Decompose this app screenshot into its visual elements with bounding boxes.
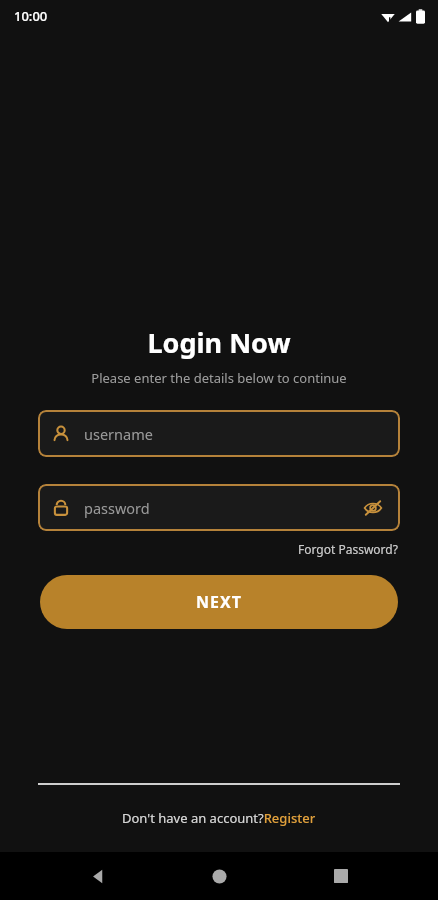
staticText: Login Now (0, 324, 438, 361)
staticText: Please enter the details below to contin… (0, 369, 438, 387)
button[interactable]: Home (195, 852, 243, 900)
button[interactable]: NEXT (40, 575, 398, 629)
button[interactable]: Recent apps (317, 852, 365, 900)
button[interactable]: Forgot Password? (296, 539, 400, 559)
staticText: 10:00 (14, 7, 48, 25)
staticText: Forgot Password? (298, 541, 398, 557)
staticText: username (84, 424, 386, 444)
other: Password (52, 499, 70, 517)
button[interactable]: Password (38, 484, 400, 531)
staticText: Don't have an account?Register (122, 809, 316, 827)
button[interactable]: Back (74, 852, 122, 900)
button[interactable]: Don't have an account?Register (118, 806, 320, 830)
staticText: NEXT (196, 591, 242, 613)
staticText: password (84, 498, 360, 518)
button[interactable]: Username (38, 410, 400, 457)
button[interactable]: Toggle password visibility (360, 495, 386, 521)
other: Username (52, 425, 70, 443)
